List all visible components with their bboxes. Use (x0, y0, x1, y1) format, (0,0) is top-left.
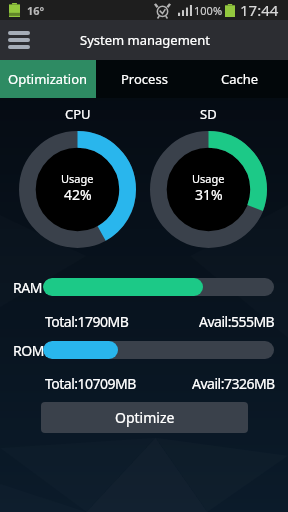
staticText: 100% (194, 3, 223, 18)
staticText: SD (200, 105, 217, 123)
staticText: Avail:555MB (199, 312, 275, 331)
staticText: Usage (192, 171, 225, 186)
staticText: CPU (65, 105, 91, 123)
staticText: 16° (27, 3, 45, 18)
staticText: 42% (64, 185, 92, 204)
button[interactable]: Cache (192, 60, 288, 98)
staticText: Total:10709MB (45, 374, 136, 393)
staticText: Optimization (8, 70, 88, 88)
staticText: System management (80, 31, 210, 49)
button[interactable]: Optimize (41, 402, 248, 433)
button[interactable]: Process (96, 60, 192, 98)
staticText: 17:44 (240, 0, 279, 20)
staticText: ROM (13, 341, 44, 359)
staticText: Optimize (115, 408, 175, 427)
button[interactable]: Menu (0, 20, 38, 60)
staticText: Cache (221, 70, 259, 88)
staticText: 31% (195, 185, 223, 204)
staticText: RAM (13, 278, 42, 296)
staticText: Total:1790MB (45, 312, 129, 331)
staticText: Process (121, 70, 168, 88)
button[interactable]: Optimization (0, 60, 96, 98)
staticText: Usage (61, 171, 94, 186)
staticText: Avail:7326MB (192, 374, 275, 393)
